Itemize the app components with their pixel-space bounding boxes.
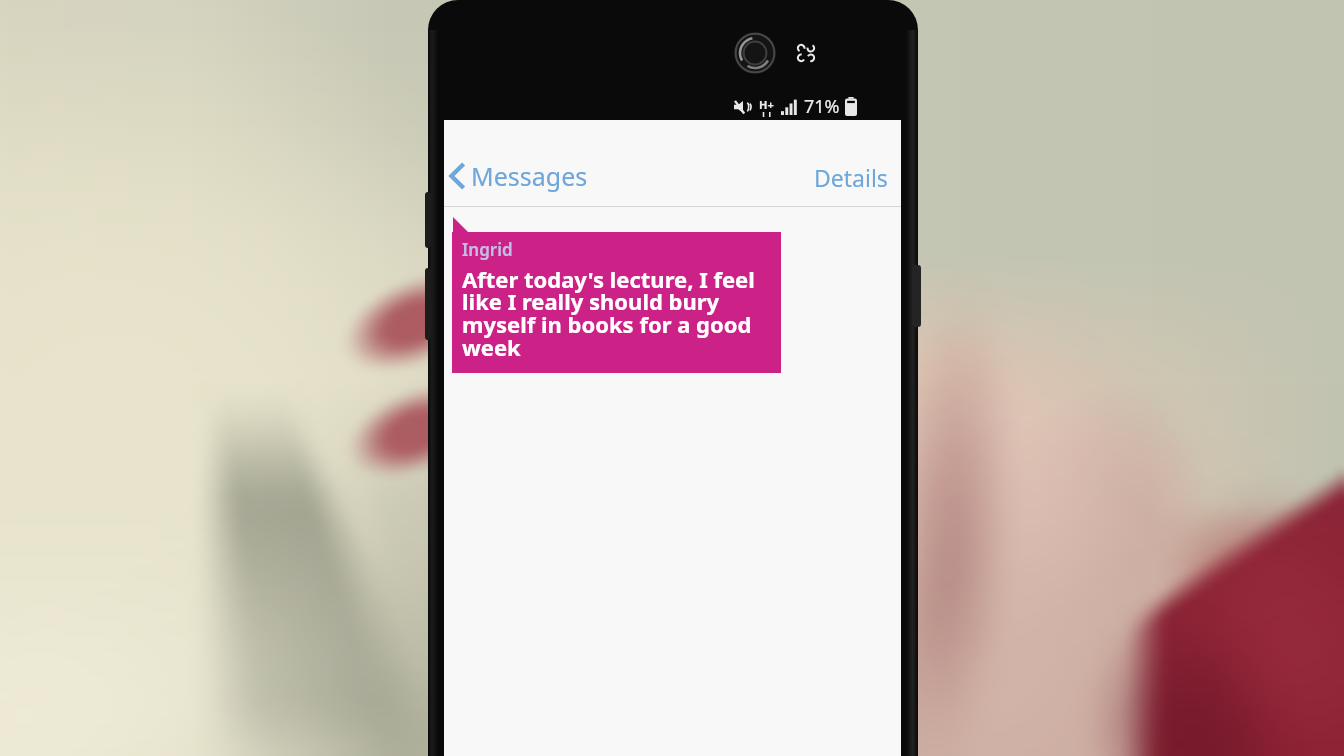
- staticText: Ingrid: [462, 238, 513, 261]
- staticText: Messages: [471, 159, 588, 193]
- staticText: Details: [814, 162, 888, 193]
- button[interactable]: Ingrid: [452, 232, 781, 373]
- staticText: H+: [759, 97, 774, 112]
- staticText: 71%: [804, 94, 840, 119]
- staticText: After today's lecture, I feel like I rea…: [462, 264, 775, 362]
- button[interactable]: Details: [814, 162, 888, 193]
- button[interactable]: Messages: [448, 159, 588, 193]
